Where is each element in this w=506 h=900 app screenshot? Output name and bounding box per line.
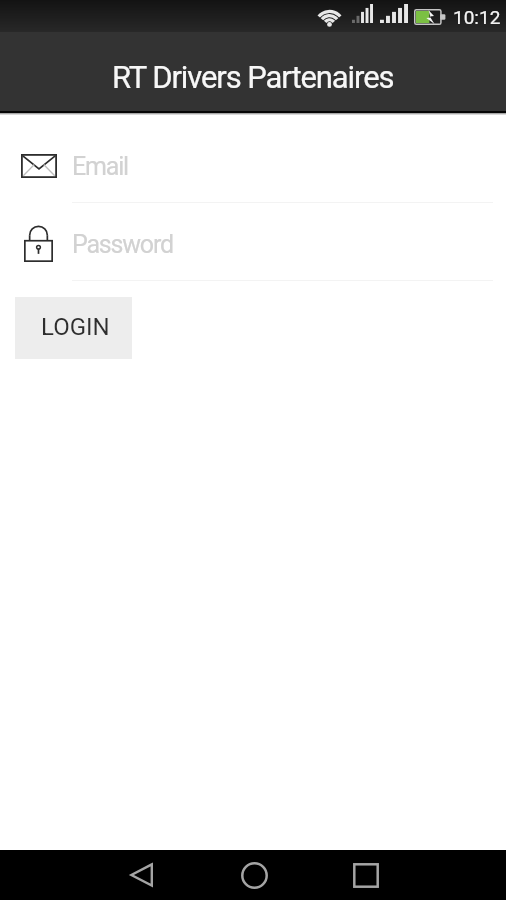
button[interactable]: Email (0, 141, 506, 219)
button[interactable]: Recent apps (323, 850, 409, 900)
staticText: Password (72, 230, 173, 259)
staticText: LOGIN (41, 313, 110, 341)
staticText: 10:12 (453, 6, 501, 28)
staticText: RT Drivers Partenaires (112, 59, 394, 95)
staticText: Email (72, 152, 128, 181)
button[interactable]: LOGIN (15, 297, 132, 359)
button[interactable]: Password (0, 219, 506, 297)
button[interactable]: Home (211, 850, 297, 900)
button[interactable]: Back (98, 850, 184, 900)
